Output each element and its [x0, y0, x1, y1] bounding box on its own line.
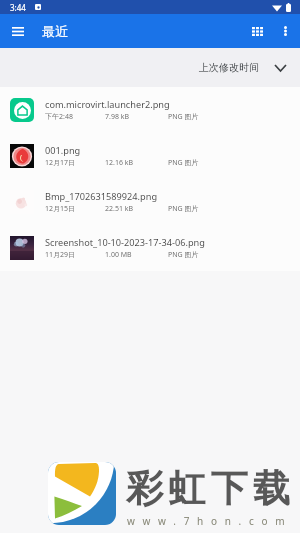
button[interactable]: 上次修改时间 — [199, 61, 286, 74]
staticText: 12月15日 — [45, 204, 76, 214]
staticText: 22.51 kB — [105, 204, 133, 214]
staticText: 彩虹下载 — [126, 465, 296, 512]
staticText: 001.png — [45, 144, 81, 157]
button[interactable]: Bmp_1702631589924.png — [0, 179, 300, 225]
button[interactable]: Open navigation menu — [5, 19, 30, 44]
staticText: PNG 图片 — [168, 112, 199, 122]
staticText: com.microvirt.launcher2.png — [45, 98, 170, 111]
button[interactable]: com.microvirt.launcher2.png — [0, 87, 300, 133]
staticText: 11月29日 — [45, 250, 76, 260]
button[interactable]: More options — [271, 17, 299, 45]
staticText: www.7hon.com — [127, 514, 293, 528]
staticText: PNG 图片 — [168, 158, 199, 168]
staticText: Screenshot_10-10-2023-17-34-06.png — [45, 236, 205, 249]
button[interactable]: Screenshot_10-10-2023-17-34-06.png — [0, 225, 300, 271]
staticText: PNG 图片 — [168, 204, 199, 214]
button[interactable]: 001.png — [0, 133, 300, 179]
staticText: 3:44 — [10, 2, 26, 13]
staticText: 上次修改时间 — [199, 61, 259, 74]
staticText: 1.00 MB — [105, 250, 132, 260]
staticText: 12月17日 — [45, 158, 76, 168]
staticText: 7.98 kB — [105, 112, 129, 122]
staticText: 12.16 kB — [105, 158, 133, 168]
staticText: Bmp_1702631589924.png — [45, 190, 158, 203]
button[interactable]: Grid view — [243, 17, 271, 45]
staticText: PNG 图片 — [168, 250, 199, 260]
staticText: 最近 — [42, 23, 68, 39]
staticText: 下午2:48 — [45, 112, 73, 122]
